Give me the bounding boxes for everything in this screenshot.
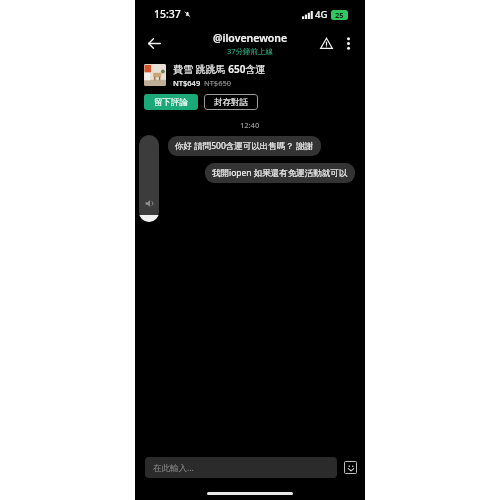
button[interactable]: Back <box>143 32 165 54</box>
staticText: NT$649 <box>173 78 201 88</box>
staticText: 留下評論 <box>154 97 188 108</box>
staticText: 37分鐘前上線 <box>227 46 274 56</box>
staticText: 在此輸入... <box>153 462 194 474</box>
staticText: @ilovenewone <box>213 31 288 45</box>
button[interactable]: 在此輸入... <box>145 457 337 478</box>
button[interactable]: 留下評論 <box>144 94 198 110</box>
staticText: 我開iopen 如果還有免運活動就可以 <box>212 167 348 179</box>
button[interactable]: Report <box>315 32 337 54</box>
staticText: 12:40 <box>240 120 260 130</box>
button[interactable]: 封存對話 <box>204 94 258 110</box>
button[interactable]: 費雪 跳跳馬 650含運 <box>144 62 356 88</box>
button[interactable]: Stickers <box>344 461 357 474</box>
staticText: 15:37 <box>154 7 181 21</box>
button[interactable]: Volume <box>139 135 159 222</box>
button[interactable]: @ilovenewone <box>213 31 288 56</box>
button[interactable]: 我開iopen 如果還有免運活動就可以 <box>205 163 355 183</box>
staticText: 4G <box>315 8 328 21</box>
staticText: 封存對話 <box>214 97 248 108</box>
staticText: 25 <box>335 10 344 20</box>
staticText: 費雪 跳跳馬 650含運 <box>173 62 266 76</box>
button[interactable]: More options <box>337 32 359 54</box>
staticText: NT$650 <box>204 78 232 88</box>
staticText: 你好 請問500含運可以出售嗎？ 謝謝 <box>175 140 314 152</box>
button[interactable]: 你好 請問500含運可以出售嗎？ 謝謝 <box>168 136 321 156</box>
